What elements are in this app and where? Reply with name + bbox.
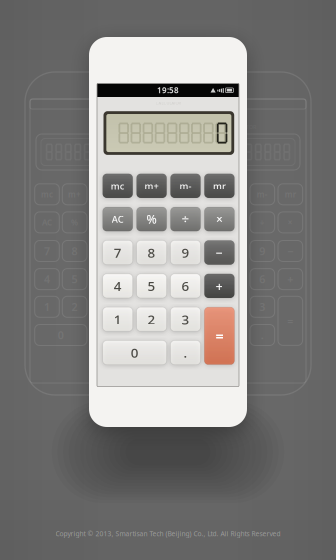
button[interactable]: ÷ — [170, 207, 200, 231]
staticText: 7 — [114, 244, 122, 261]
button[interactable]: 1 — [103, 307, 133, 331]
staticText: 3 — [181, 310, 189, 328]
staticText: mr — [285, 189, 296, 200]
staticText: % — [71, 217, 78, 228]
staticText: 7 — [44, 244, 50, 258]
staticText: = — [287, 314, 293, 328]
button[interactable]: 8 — [137, 240, 167, 264]
button[interactable]: × — [204, 207, 234, 231]
staticText: 9 — [181, 244, 189, 261]
staticText: AC — [42, 217, 52, 228]
staticText: 6 — [259, 272, 265, 286]
staticText: × — [216, 211, 223, 227]
button[interactable]: 6 — [170, 274, 200, 298]
button[interactable]: m- — [170, 174, 200, 198]
staticText: . — [183, 344, 187, 361]
staticText: 2 — [148, 310, 156, 328]
staticText: = — [215, 326, 223, 346]
staticText: 19:58 — [157, 85, 179, 95]
button[interactable]: . — [170, 341, 200, 365]
button[interactable]: % — [137, 207, 167, 231]
staticText: 1 — [44, 300, 50, 314]
staticText: mr — [213, 180, 226, 192]
button[interactable]: 3 — [170, 307, 200, 331]
button[interactable]: mr — [204, 174, 234, 198]
staticText: 0 — [131, 344, 139, 361]
staticText: 0 — [58, 328, 64, 342]
staticText: m+ — [68, 189, 81, 200]
button[interactable]: AC — [103, 207, 133, 231]
staticText: 3 — [259, 300, 265, 314]
staticText: CALCULATOR — [155, 100, 180, 106]
button[interactable]: mc — [103, 174, 133, 198]
staticText: 5 — [72, 272, 78, 286]
button[interactable]: m+ — [137, 174, 167, 198]
staticText: ÷ — [181, 210, 189, 228]
button[interactable]: 5 — [137, 274, 167, 298]
button[interactable]: + — [204, 274, 234, 298]
staticText: AC — [112, 213, 124, 225]
button[interactable]: = — [204, 307, 234, 365]
staticText: 4 — [114, 277, 122, 295]
staticText: % — [147, 211, 157, 227]
staticText: CALCULATOR — [224, 123, 256, 131]
staticText: 8 — [72, 244, 78, 258]
button[interactable]: − — [204, 240, 234, 264]
staticText: mc — [111, 180, 125, 192]
staticText: 8 — [148, 244, 156, 261]
staticText: Copyright © 2013, Smartisan Tech (Beijin… — [55, 529, 280, 538]
button[interactable]: 0 — [103, 341, 167, 365]
staticText: m- — [179, 180, 191, 192]
staticText: 1 — [114, 310, 122, 328]
staticText: 2 — [72, 300, 78, 314]
staticText: − — [215, 244, 223, 261]
button[interactable]: 4 — [103, 274, 133, 298]
staticText: 6 — [181, 277, 189, 295]
button[interactable]: 2 — [137, 307, 167, 331]
button[interactable]: 7 — [103, 240, 133, 264]
staticText: + — [215, 277, 223, 295]
staticText: 4 — [44, 272, 50, 286]
staticText: 5 — [148, 277, 156, 295]
button[interactable]: 9 — [170, 240, 200, 264]
staticText: m+ — [145, 180, 159, 192]
staticText: mc — [41, 189, 53, 200]
staticText: 9 — [259, 244, 265, 258]
